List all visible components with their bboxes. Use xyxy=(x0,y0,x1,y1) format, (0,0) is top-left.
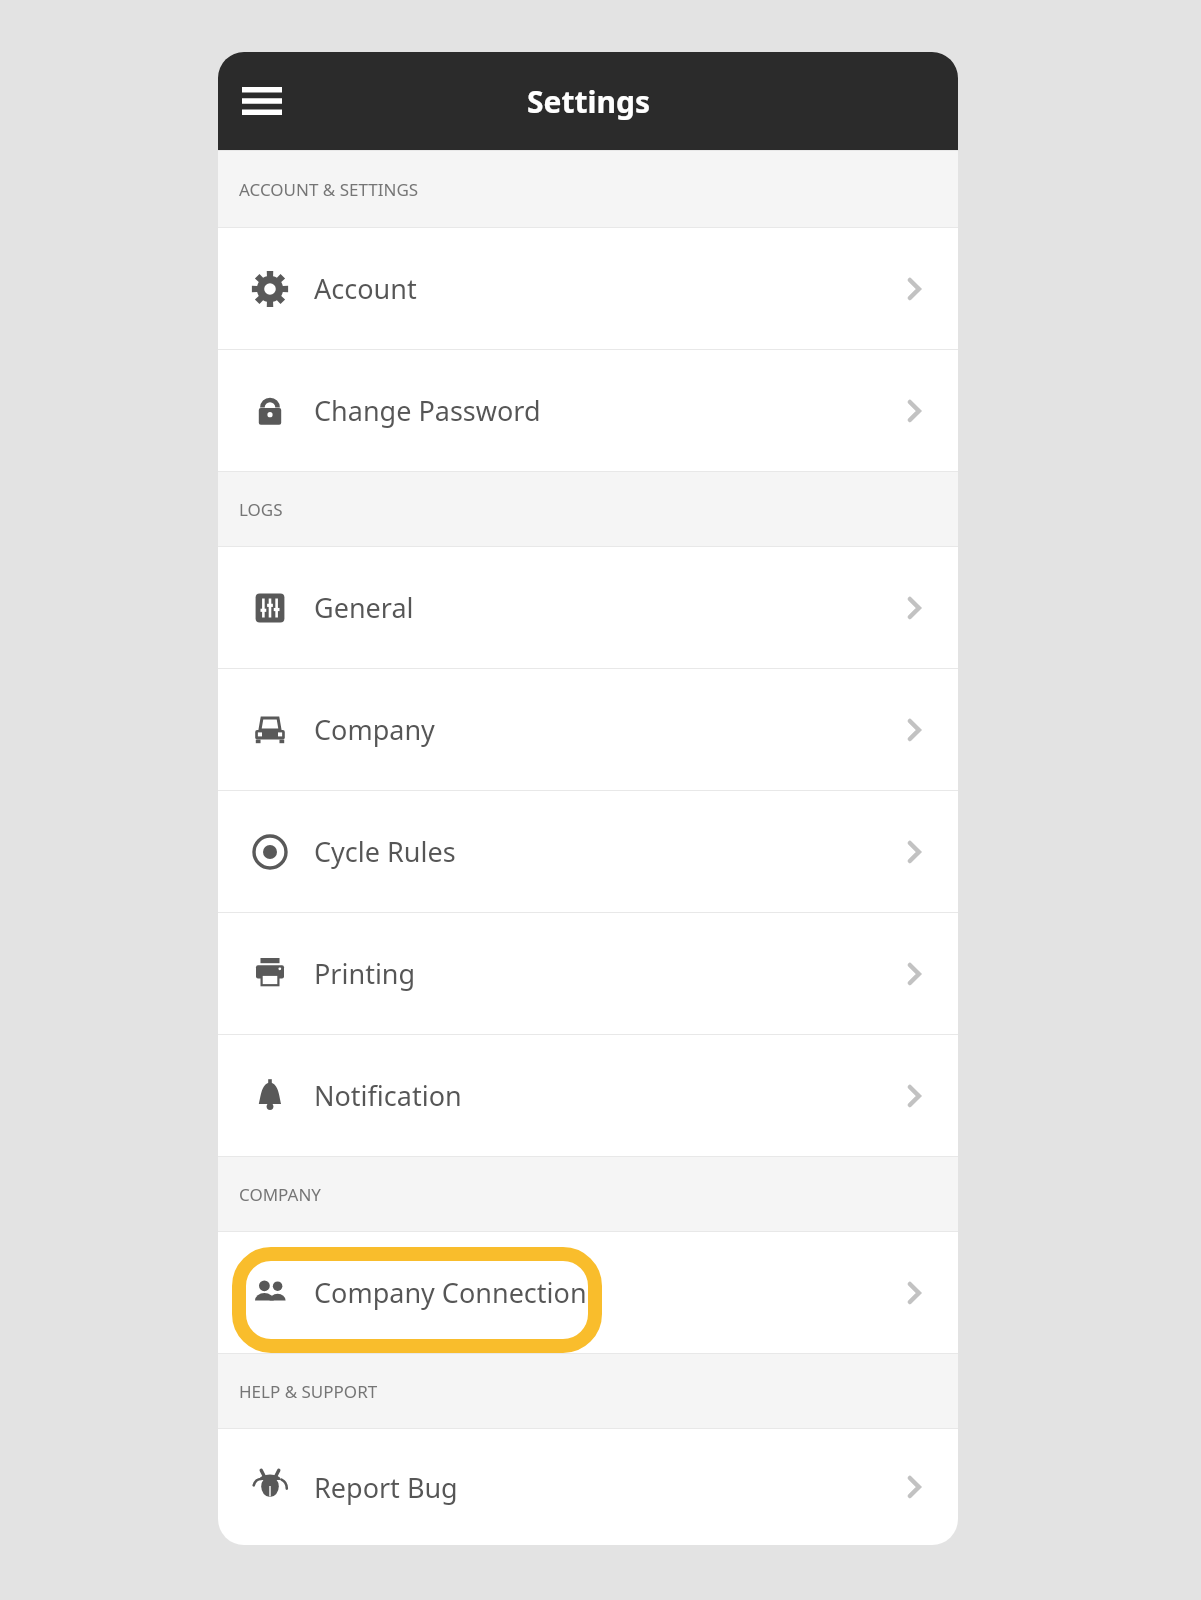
staticText: Notification xyxy=(314,1077,462,1114)
staticText: HELP & SUPPORT xyxy=(239,1380,378,1403)
button[interactable]: Company xyxy=(218,669,958,790)
button[interactable]: Change Password xyxy=(218,350,958,471)
button[interactable]: Report Bug xyxy=(218,1429,958,1545)
staticText: ACCOUNT & SETTINGS xyxy=(239,178,419,201)
button[interactable]: Notification xyxy=(218,1035,958,1156)
staticText: Company Connection xyxy=(314,1274,587,1311)
staticText: General xyxy=(314,589,414,626)
staticText: COMPANY xyxy=(239,1183,321,1206)
button[interactable]: Account xyxy=(218,228,958,349)
staticText: Company xyxy=(314,711,435,748)
staticText: Account xyxy=(314,270,417,307)
button[interactable]: Printing xyxy=(218,913,958,1034)
button[interactable]: General xyxy=(218,547,958,668)
button[interactable]: Cycle Rules xyxy=(218,791,958,912)
button[interactable]: Company Connection xyxy=(218,1232,958,1353)
button[interactable]: Open navigation menu xyxy=(234,73,290,129)
staticText: Change Password xyxy=(314,392,541,429)
staticText: LOGS xyxy=(239,498,283,521)
staticText: Report Bug xyxy=(314,1469,458,1506)
staticText: Cycle Rules xyxy=(314,833,456,870)
staticText: Printing xyxy=(314,955,416,992)
staticText: Settings xyxy=(527,81,650,122)
